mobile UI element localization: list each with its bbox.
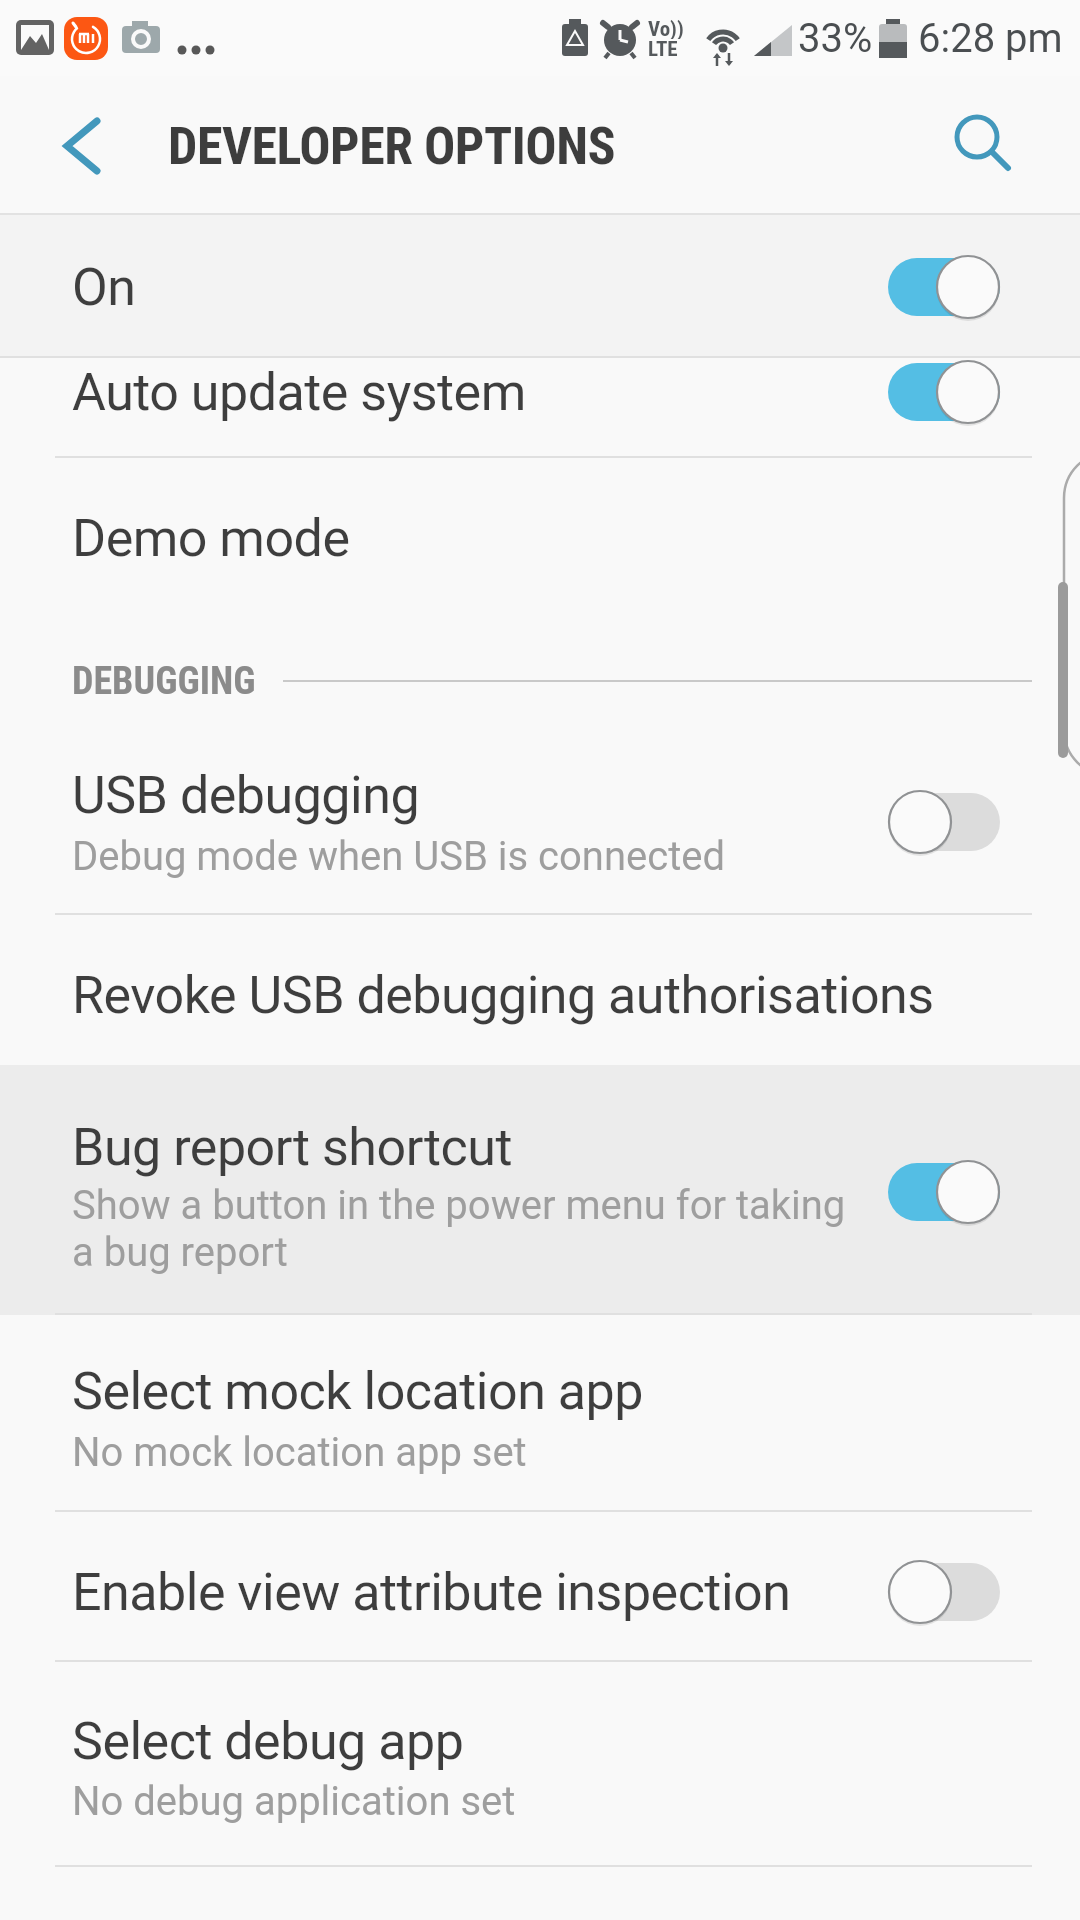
staticText: Show a button in the power menu for taki…: [72, 1182, 846, 1276]
staticText: USB debugging: [72, 765, 420, 826]
staticText: DEVELOPER OPTIONS: [168, 116, 616, 177]
button[interactable]: [0, 358, 1080, 458]
staticText: No debug application set: [72, 1778, 516, 1825]
button[interactable]: [0, 458, 1080, 622]
staticText: Select debug app: [72, 1711, 464, 1772]
staticText: 6:28 pm: [918, 15, 1063, 62]
button[interactable]: [0, 1662, 1080, 1865]
staticText: Select mock location app: [72, 1361, 643, 1422]
staticText: Revoke USB debugging authorisations: [72, 965, 934, 1026]
button[interactable]: [0, 722, 1080, 913]
staticText: Demo mode: [72, 508, 350, 569]
button[interactable]: [930, 90, 1040, 200]
staticText: DEBUGGING: [72, 659, 256, 704]
staticText: No mock location app set: [72, 1429, 527, 1476]
staticText: Enable view attribute inspection: [72, 1562, 791, 1623]
staticText: Debug mode when USB is connected: [72, 833, 726, 880]
staticText: Vo)): [648, 17, 684, 39]
staticText: LTE: [648, 37, 678, 59]
staticText: Auto update system: [72, 362, 526, 423]
staticText: Bug report shortcut: [72, 1117, 512, 1178]
button[interactable]: [0, 1512, 1080, 1660]
button[interactable]: [0, 215, 1080, 356]
button[interactable]: [30, 96, 130, 196]
staticText: 33%: [798, 15, 873, 62]
button[interactable]: [0, 1065, 1080, 1315]
button[interactable]: [0, 1315, 1080, 1510]
staticText: On: [72, 257, 136, 318]
button[interactable]: [0, 915, 1080, 1065]
